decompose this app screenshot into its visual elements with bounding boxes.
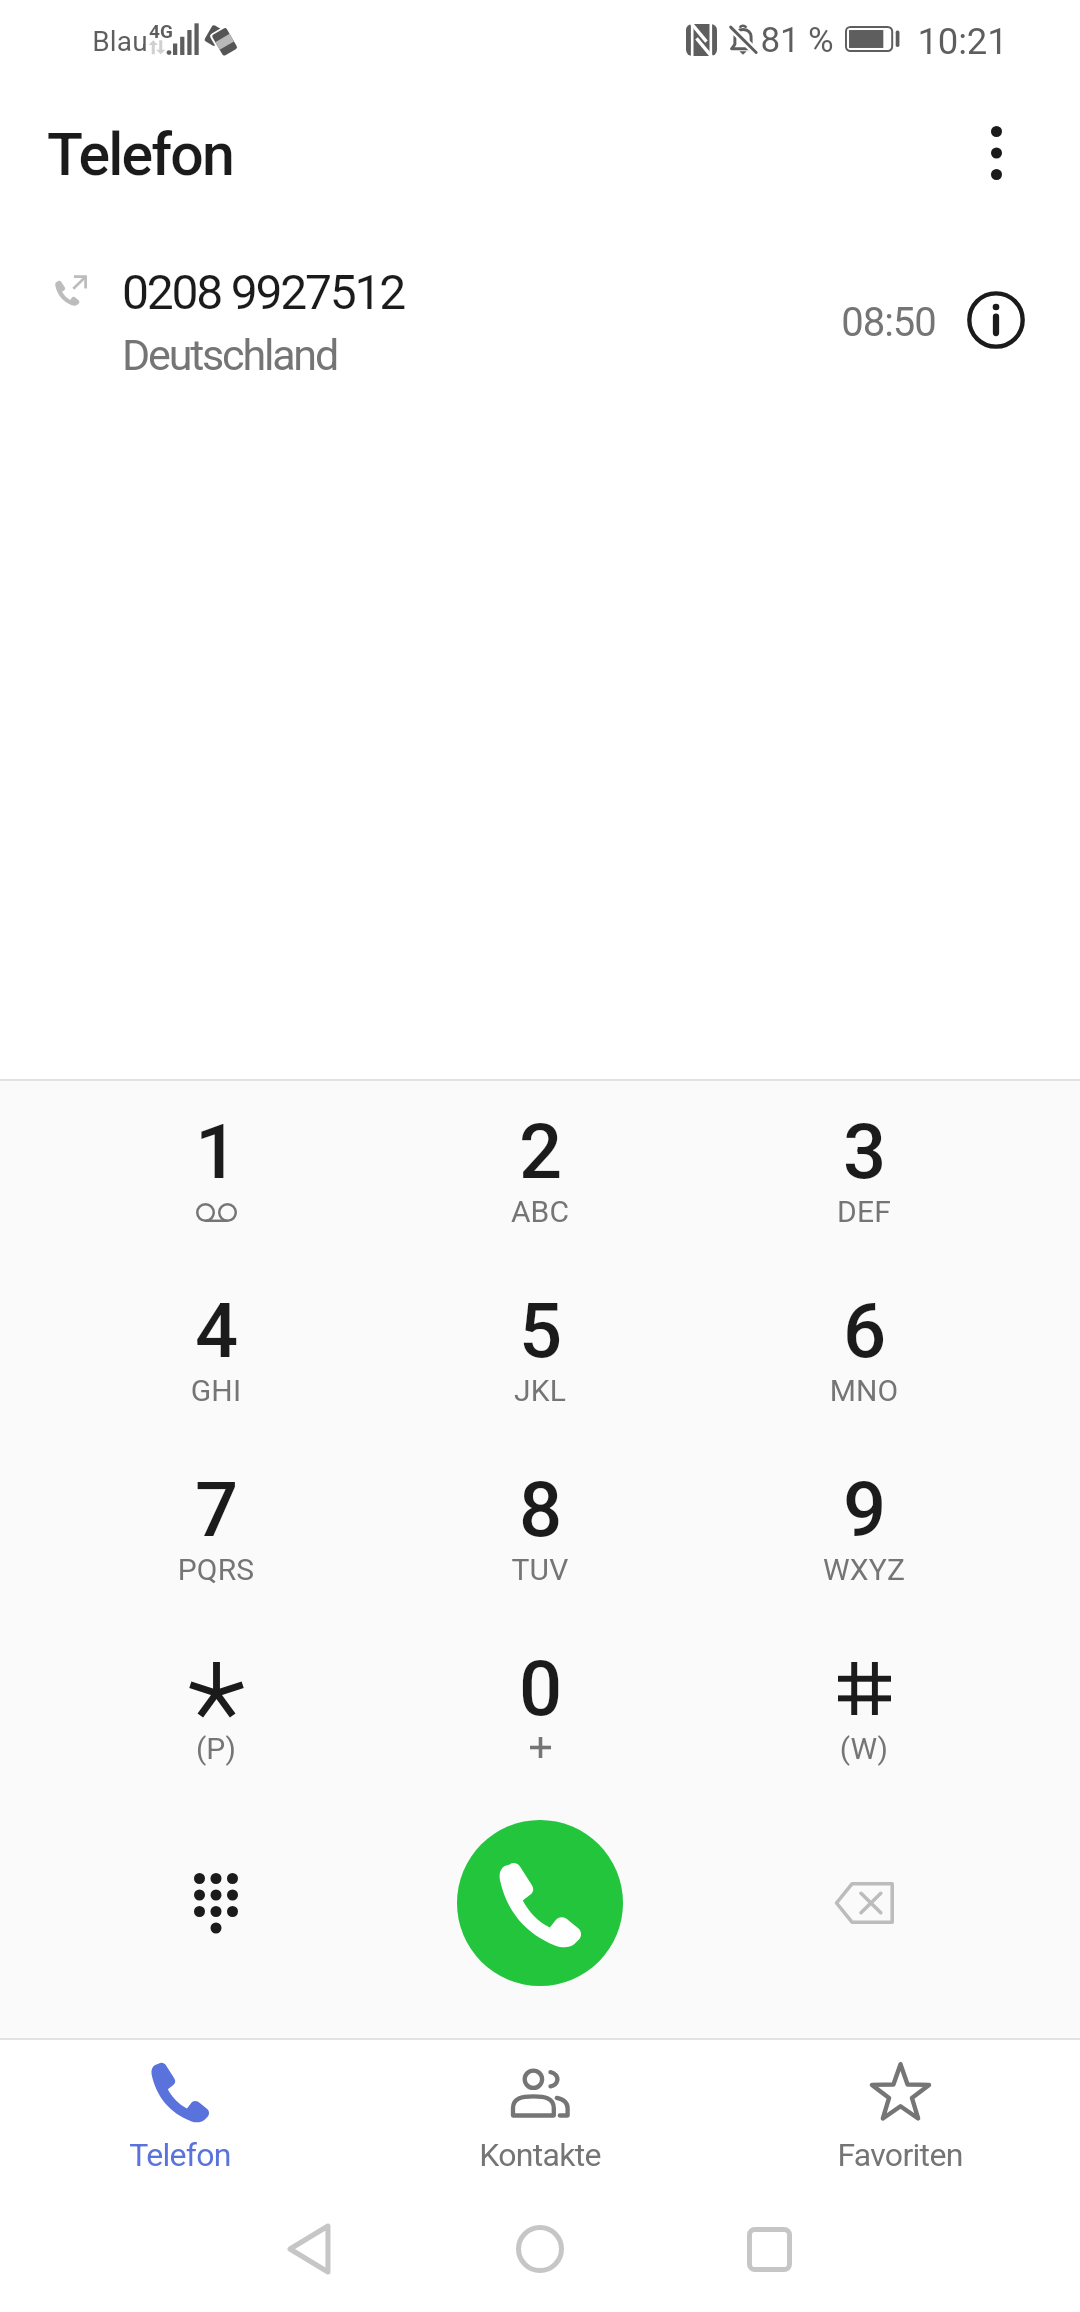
staticText: 4G [149, 20, 173, 42]
staticText: 5 [378, 1286, 702, 1375]
staticText: 0 [378, 1644, 702, 1733]
button[interactable]: 9 [702, 1434, 1026, 1594]
staticText: 3 [702, 1107, 1026, 1196]
button[interactable]: Favoriten [720, 2038, 1080, 2180]
staticText: 7 [54, 1465, 378, 1554]
staticText: ABC [378, 1194, 702, 1229]
button[interactable]: 7 [54, 1434, 378, 1594]
staticText: 0208 9927512 [122, 264, 404, 320]
button[interactable]: 5 [378, 1255, 702, 1415]
staticText: MNO [702, 1373, 1026, 1408]
staticText: (W) [702, 1731, 1026, 1766]
staticText: 81 % [760, 20, 834, 61]
button[interactable]: 8 [378, 1434, 702, 1594]
staticText: 10:21 [917, 20, 1008, 63]
staticText: Telefon [47, 120, 233, 189]
button[interactable]: Delete [702, 1800, 1026, 2006]
button[interactable]: Kontakte [360, 2038, 720, 2180]
button[interactable]: Telefon [0, 2038, 360, 2180]
button[interactable]: 0 [378, 1613, 702, 1773]
staticText: Telefon [129, 2136, 231, 2174]
staticText: Deutschland [122, 330, 337, 380]
staticText: Kontakte [479, 2136, 601, 2174]
staticText: WXYZ [702, 1552, 1026, 1587]
button[interactable]: 0208 9927512 [0, 224, 1080, 376]
button[interactable]: star [54, 1613, 378, 1773]
button[interactable]: 3 [702, 1076, 1026, 1236]
staticText: 9 [702, 1465, 1026, 1554]
staticText: 1 [54, 1107, 378, 1196]
button[interactable]: 4 [54, 1255, 378, 1415]
button[interactable]: Hide keypad [54, 1800, 378, 2006]
staticText: DEF [702, 1194, 1026, 1229]
button[interactable]: Call [457, 1820, 623, 1986]
button[interactable]: More options [952, 109, 1040, 197]
staticText: Favoriten [837, 2136, 963, 2174]
staticText: 6 [702, 1286, 1026, 1375]
staticText: 08:50 [841, 299, 936, 346]
staticText: PQRS [54, 1552, 378, 1587]
staticText: 4 [54, 1286, 378, 1375]
button[interactable]: Recents [727, 2207, 811, 2291]
staticText: GHI [54, 1373, 378, 1408]
button[interactable]: Back [267, 2207, 351, 2291]
staticText: Blau [92, 25, 148, 58]
staticText: 2 [378, 1107, 702, 1196]
staticText: TUV [378, 1552, 702, 1587]
button[interactable]: 2 [378, 1076, 702, 1236]
button[interactable]: 6 [702, 1255, 1026, 1415]
button[interactable]: 1 [54, 1076, 378, 1236]
button[interactable]: Home [498, 2207, 582, 2291]
staticText: (P) [54, 1731, 378, 1766]
button[interactable]: pound [702, 1613, 1026, 1773]
staticText: JKL [378, 1373, 702, 1408]
other: star [189, 1662, 244, 1714]
other: pound [838, 1662, 891, 1715]
staticText: 8 [378, 1465, 702, 1554]
button[interactable]: Call details [951, 275, 1041, 365]
